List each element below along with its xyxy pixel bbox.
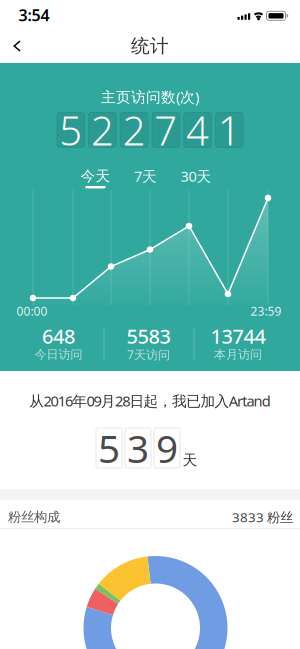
button[interactable]: Back [4,29,30,62]
button[interactable]: 30天 [172,159,219,193]
staticText: 00:00 [16,303,47,319]
staticText: 2 [123,103,146,156]
staticText: 1 [218,103,241,156]
staticText: 今天 [80,167,110,185]
staticText: 7天访问 [127,346,170,362]
staticText: 30天 [180,166,211,186]
staticText: 4 [186,103,209,156]
staticText: 5583 [126,323,170,349]
staticText: 统计 [131,34,169,57]
staticText: 3:54 [18,4,49,26]
staticText: 9 [156,422,178,474]
staticText: 天 [182,451,197,469]
staticText: 648 [42,323,75,349]
button[interactable]: 今天 [72,160,118,192]
staticText: 3833 粉丝 [232,508,293,526]
staticText: 主页访问数(次) [101,87,199,106]
staticText: 3 [127,422,149,474]
button[interactable]: 7天 [126,159,165,193]
staticText: 5 [59,103,82,156]
staticText: 2 [91,103,114,156]
staticText: 今日访问 [34,347,82,362]
staticText: 从2016年09月28日起，我已加入Artand [29,391,271,411]
staticText: 粉丝构成 [8,509,60,525]
staticText: 7天 [134,166,157,186]
staticText: 本月访问 [214,347,262,362]
staticText: 7 [154,103,177,156]
staticText: 5 [98,422,120,474]
staticText: 23:59 [250,303,281,319]
staticText: 13744 [210,323,265,349]
